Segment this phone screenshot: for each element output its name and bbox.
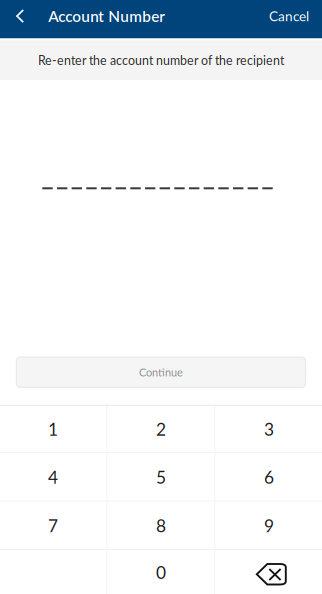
button[interactable]: 9: [215, 502, 322, 549]
staticText: 8: [156, 515, 166, 536]
button[interactable]: Back: [0, 0, 40, 35]
staticText: 3: [264, 419, 274, 439]
button[interactable]: 6: [215, 453, 322, 501]
staticText: 6: [264, 467, 274, 487]
button[interactable]: Cancel: [263, 0, 315, 35]
button[interactable]: 2: [107, 406, 214, 452]
button[interactable]: 8: [107, 502, 214, 549]
staticText: Account Number: [48, 7, 165, 25]
button[interactable]: 7: [0, 502, 106, 549]
staticText: 0: [156, 562, 166, 583]
staticText: Continue: [139, 366, 183, 379]
button[interactable]: 1: [0, 406, 106, 452]
button[interactable]: 4: [0, 453, 106, 501]
staticText: 7: [48, 515, 58, 536]
staticText: 4: [48, 467, 58, 487]
button[interactable]: Continue: [16, 357, 306, 387]
staticText: 2: [156, 419, 166, 439]
button[interactable]: Delete: [215, 550, 322, 594]
button[interactable]: 0: [107, 550, 214, 594]
staticText: Re-enter the account number of the recip…: [38, 53, 284, 68]
button[interactable]: 3: [215, 406, 322, 452]
button[interactable]: 5: [107, 453, 214, 501]
staticText: 1: [48, 419, 58, 439]
staticText: 9: [264, 515, 274, 536]
staticText: Cancel: [269, 8, 309, 24]
staticText: 5: [156, 467, 166, 487]
